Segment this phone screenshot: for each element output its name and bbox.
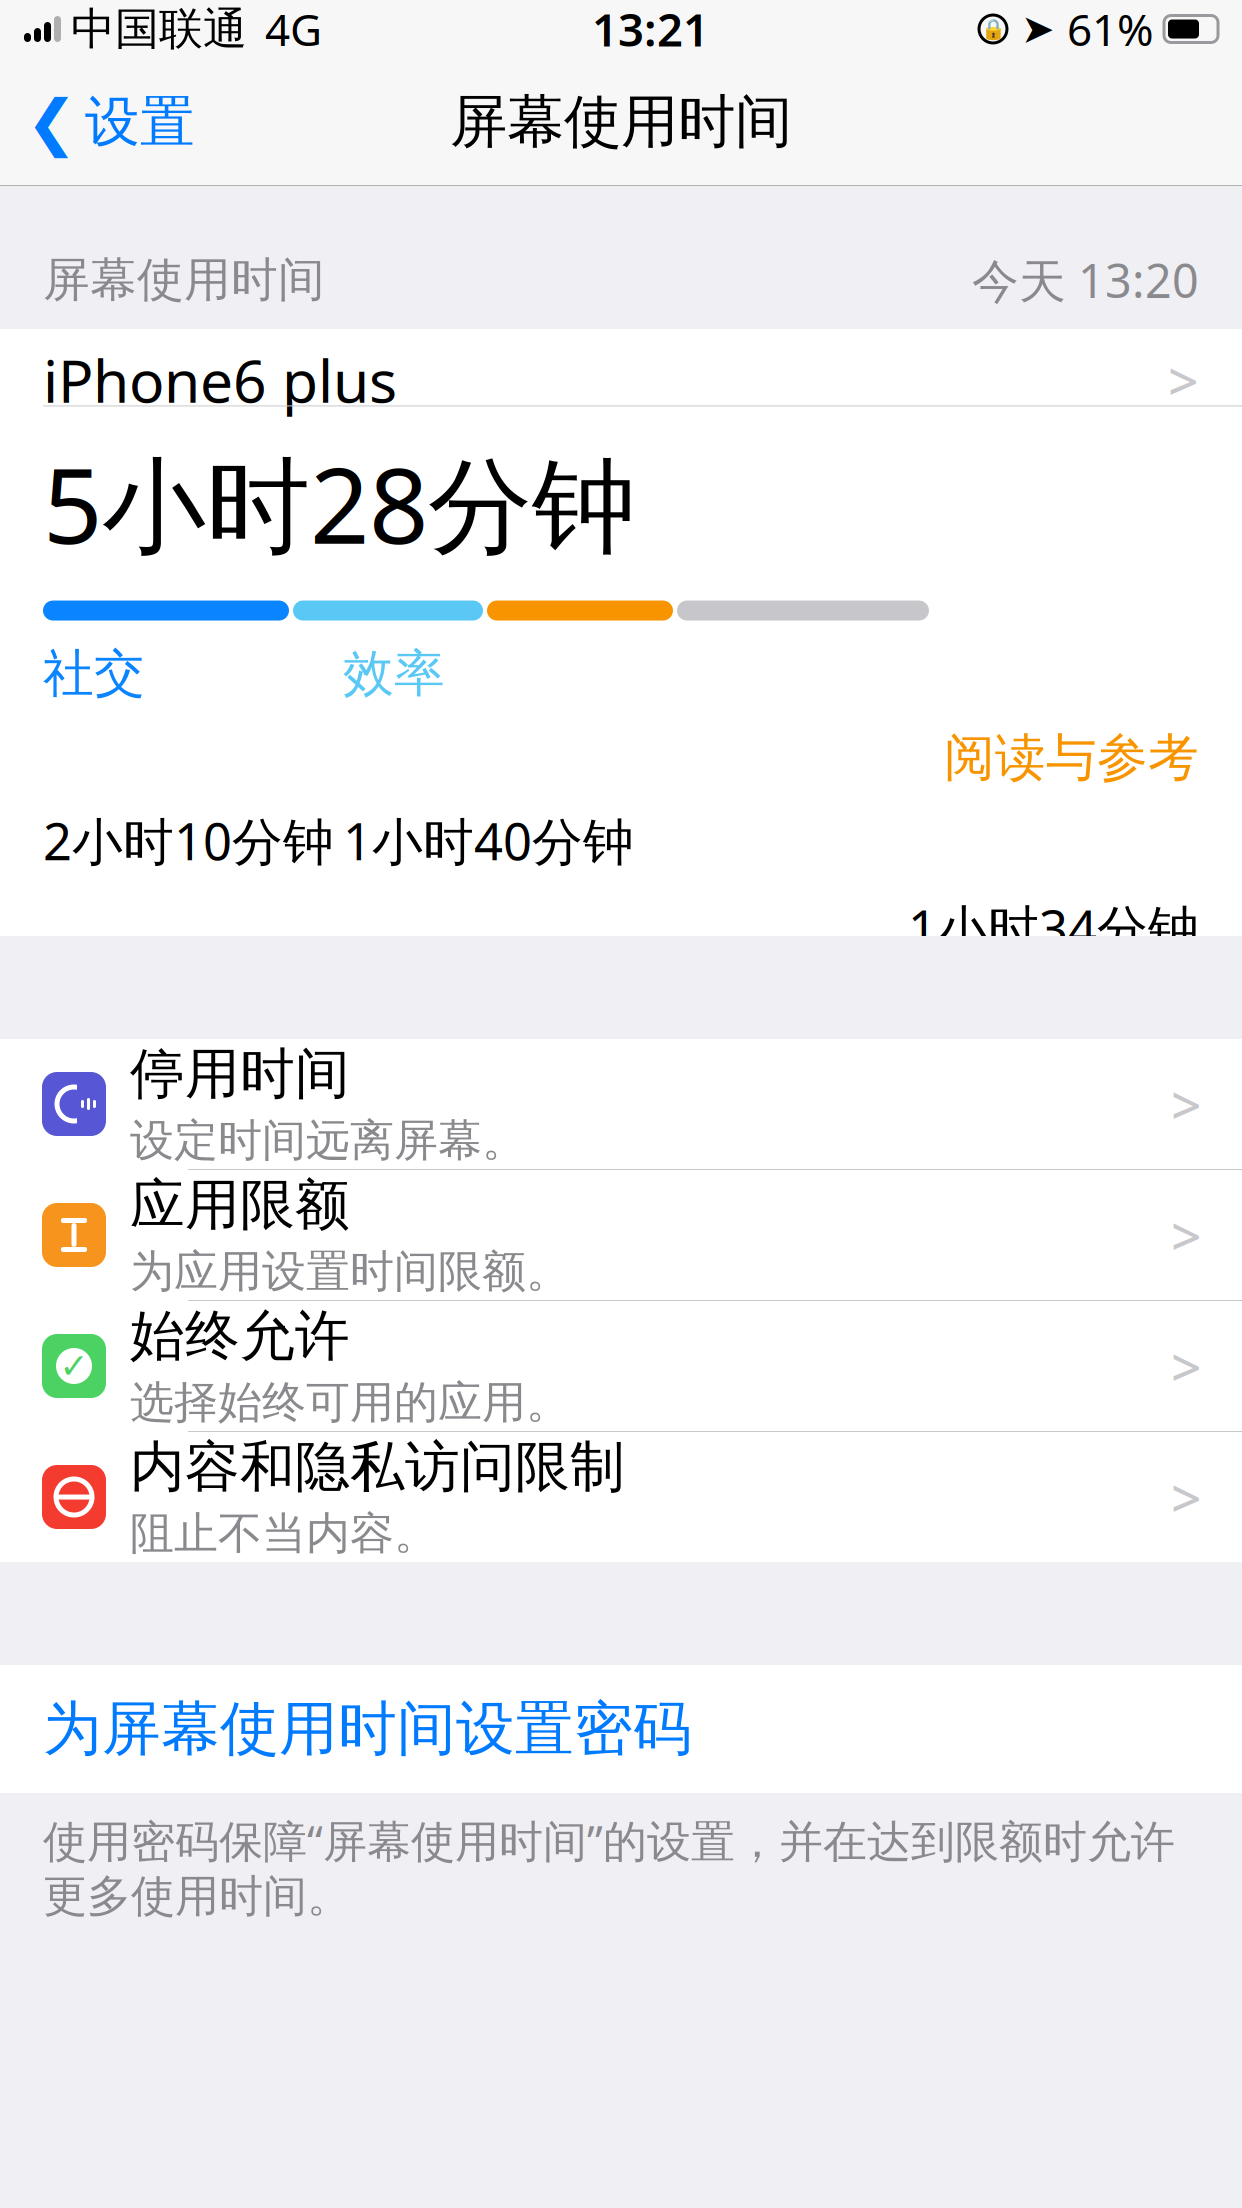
staticText: > (1168, 345, 1199, 415)
staticText: ✓ (59, 1346, 88, 1386)
staticText: > (1171, 1331, 1202, 1401)
staticText: 为应用设置时间限额。 (130, 1245, 570, 1299)
staticText: 使用密码保障“屏幕使用时间”的设置，并在达到限额时允许更多使用时间。 (43, 1811, 1175, 1923)
staticText: 内容和隐私访问限制 (130, 1433, 625, 1500)
staticText: 社交 (43, 642, 145, 705)
button[interactable]: ✓ (0, 1301, 1242, 1431)
staticText: 设定时间远离屏幕。 (130, 1114, 526, 1168)
button[interactable]: 为屏幕使用时间设置密码 (0, 1665, 1242, 1793)
staticText: 1小时40分钟 (343, 807, 634, 874)
staticText: > (1171, 1462, 1202, 1532)
staticText: 设置 (85, 88, 195, 155)
button[interactable]: iPhone6 plus (0, 329, 1242, 431)
staticText: 阻止不当内容。 (130, 1507, 438, 1561)
staticText: 为屏幕使用时间设置密码 (43, 1693, 692, 1765)
staticText: 停用时间 (130, 1040, 350, 1107)
staticText: 效率 (343, 642, 445, 705)
staticText: > (1171, 1200, 1202, 1270)
staticText: 应用限额 (130, 1171, 350, 1238)
staticText: 🔒 (980, 18, 1005, 40)
staticText: 阅读与参考 (944, 727, 1199, 789)
staticText: 1小时34分钟 (908, 894, 1199, 962)
button[interactable]: 应用限额 (0, 1170, 1242, 1300)
staticText: 61% (1067, 0, 1154, 58)
staticText: 屏幕使用时间 (43, 251, 325, 309)
staticText: 4G (265, 0, 322, 58)
staticText: 选择始终可用的应用。 (130, 1376, 570, 1430)
staticText: > (1171, 1069, 1202, 1139)
staticText: 2小时10分钟 (43, 807, 334, 874)
staticText: ➤ (1021, 6, 1055, 52)
staticText: 13:21 (592, 0, 709, 59)
button[interactable]: 内容和隐私访问限制 (0, 1432, 1242, 1562)
staticText: iPhone6 plus (43, 341, 397, 419)
button[interactable]: 停用时间 (0, 1039, 1242, 1169)
button[interactable]: ❮ (0, 76, 221, 168)
staticText: 始终允许 (130, 1302, 350, 1369)
staticText: 今天 13:20 (972, 249, 1199, 311)
staticText: 5小时28分钟 (43, 434, 636, 572)
staticText: 中国联通 (71, 2, 247, 56)
staticText: 屏幕使用时间 (450, 87, 792, 157)
staticText: ❮ (26, 87, 77, 157)
